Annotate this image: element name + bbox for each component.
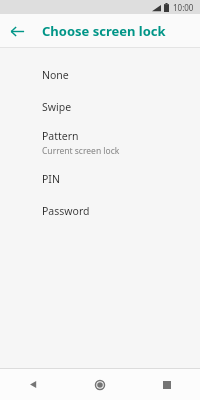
staticText: Swipe — [42, 100, 72, 114]
button[interactable]: Pattern — [0, 123, 200, 163]
button[interactable]: Back — [0, 369, 66, 400]
button[interactable]: Back — [0, 14, 34, 48]
staticText: 10:00 — [173, 2, 194, 13]
staticText: Current screen lock — [42, 145, 120, 157]
button[interactable]: Recent apps — [133, 369, 200, 400]
staticText: Choose screen lock — [42, 22, 166, 40]
button[interactable]: PIN — [0, 163, 200, 195]
button[interactable]: Swipe — [0, 91, 200, 123]
button[interactable]: Home — [66, 369, 133, 400]
staticText: Password — [42, 204, 90, 218]
button[interactable]: None — [0, 59, 200, 91]
staticText: PIN — [42, 172, 60, 186]
staticText: None — [42, 68, 69, 82]
button[interactable]: Password — [0, 195, 200, 227]
staticText: Pattern — [42, 129, 79, 143]
